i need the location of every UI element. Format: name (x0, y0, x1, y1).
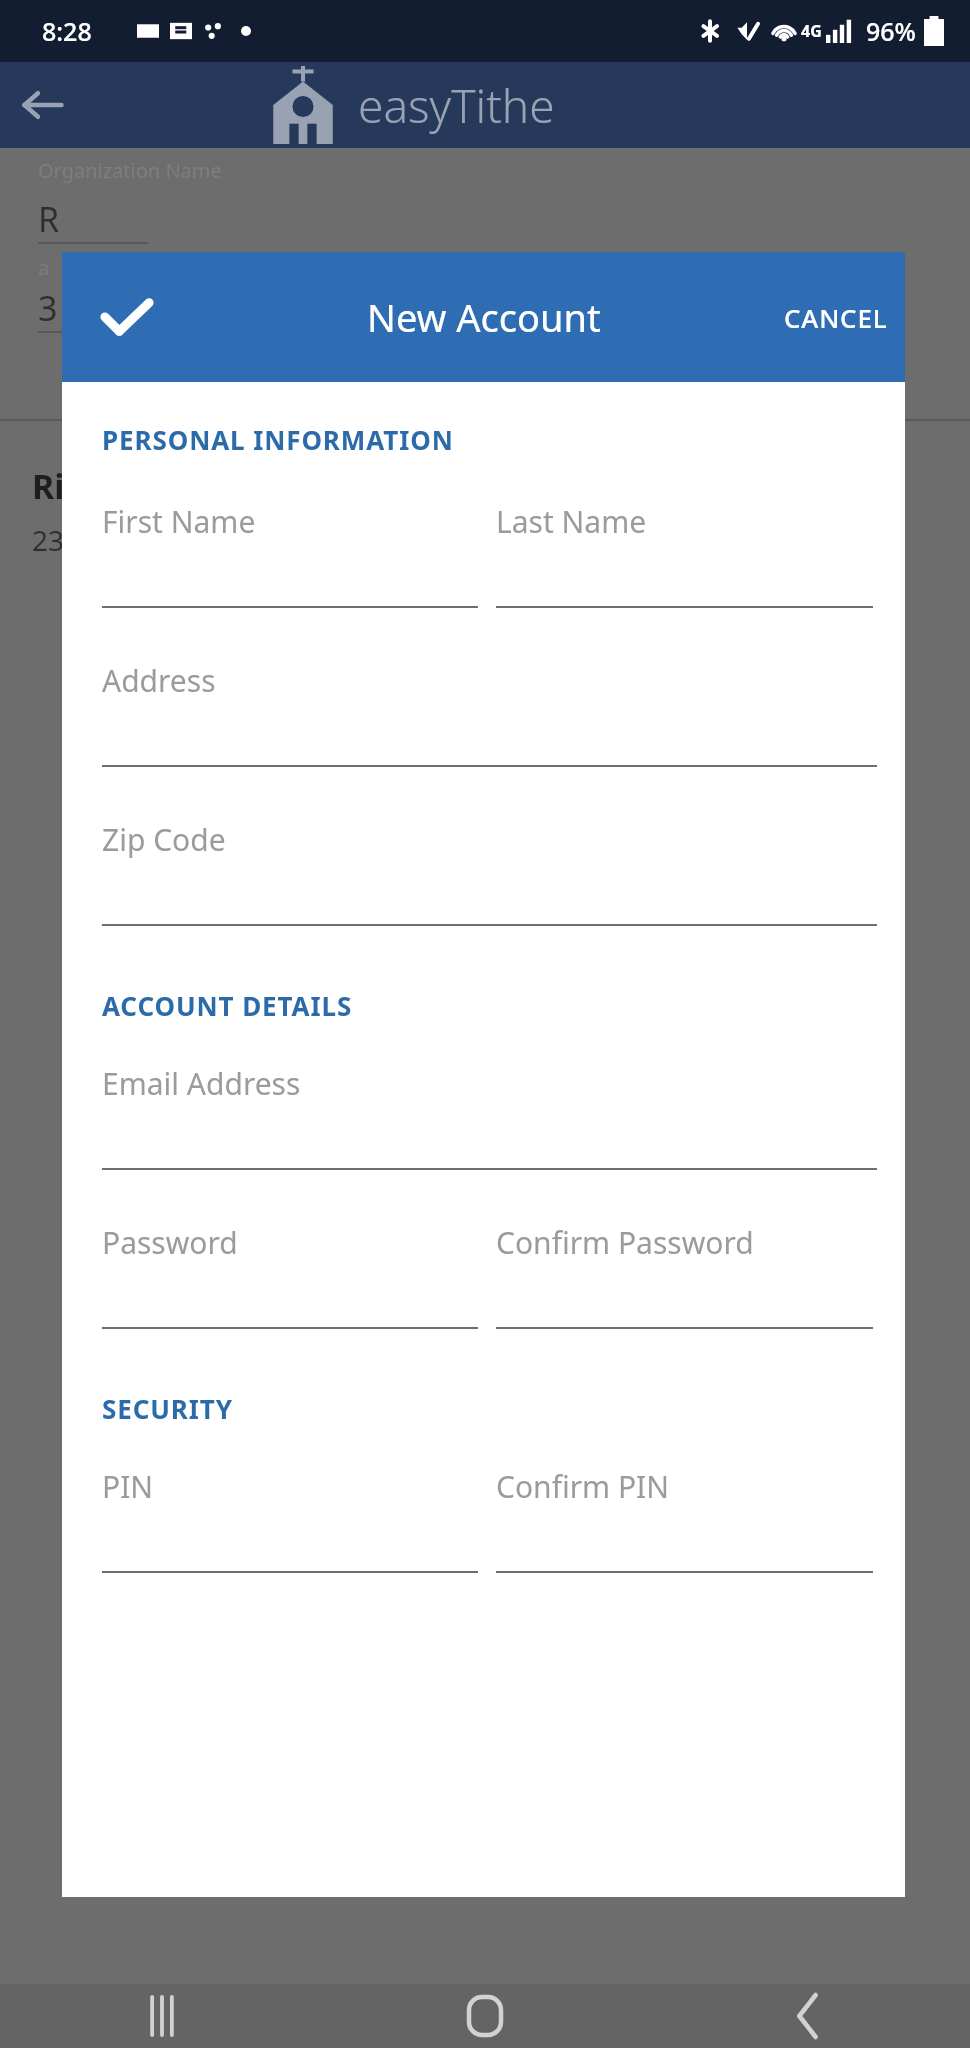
staticText: First Name (102, 501, 256, 542)
staticText: SECURITY (102, 1391, 233, 1426)
staticText: Confirm PIN (496, 1466, 670, 1507)
staticText: PIN (102, 1466, 154, 1507)
staticText: 3 (38, 285, 58, 331)
staticText: Password (102, 1222, 238, 1263)
staticText: Email Address (102, 1063, 301, 1104)
staticText: Ri (32, 463, 65, 509)
staticText: ACCOUNT DETAILS (102, 988, 353, 1023)
staticText: 23- (32, 521, 74, 559)
button[interactable]: Back (646, 1984, 969, 2048)
button[interactable]: Recents (0, 1984, 323, 2048)
staticText: CANCEL (784, 300, 888, 335)
staticText: 96% (866, 14, 916, 48)
staticText: Confirm Password (496, 1222, 754, 1263)
staticText: R (38, 196, 60, 242)
staticText: PERSONAL INFORMATION (102, 422, 454, 457)
staticText: Last Name (496, 501, 647, 542)
button[interactable]: Back (0, 62, 86, 148)
staticText: Organization Name (38, 157, 222, 184)
staticText: New Account (367, 291, 601, 343)
button[interactable]: Save account (62, 252, 192, 382)
button[interactable]: Home (323, 1984, 646, 2048)
staticText: easyTithe (358, 74, 555, 137)
staticText: 4G (801, 20, 822, 42)
button[interactable]: CANCEL (767, 266, 905, 369)
staticText: Zip Code (102, 819, 226, 860)
staticText: a (38, 254, 50, 281)
staticText: 8:28 (42, 14, 92, 48)
staticText: Address (102, 660, 216, 701)
